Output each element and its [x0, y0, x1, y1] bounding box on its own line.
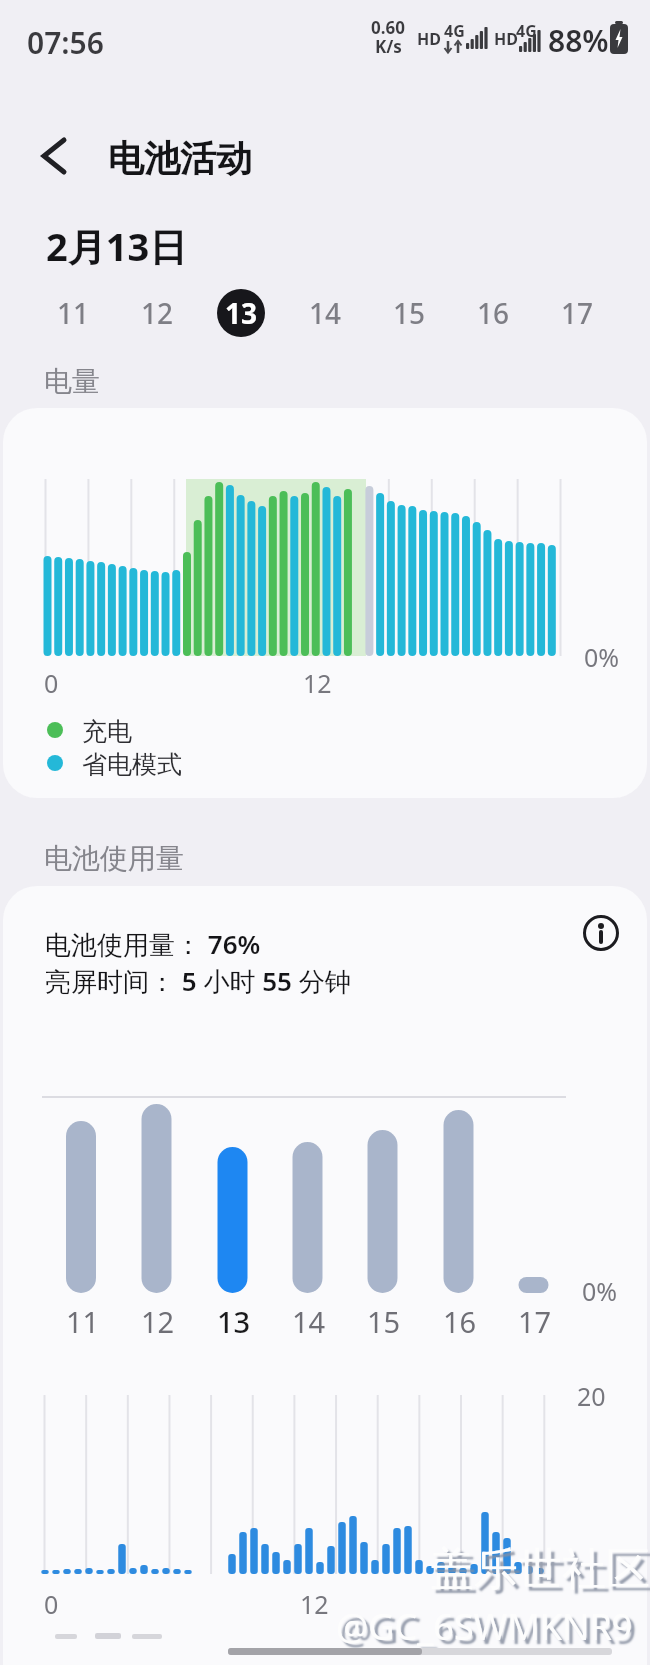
staticText: 2月13日	[46, 220, 188, 272]
staticText: 4G	[516, 20, 537, 42]
button[interactable]: 12	[125, 289, 189, 337]
staticText: 14	[292, 1302, 326, 1340]
staticText: 0%	[582, 1274, 618, 1308]
staticText: 电池使用量： 76%	[45, 926, 261, 962]
staticText: @GC_6SWMKNR9	[336, 1602, 633, 1651]
staticText: 16	[443, 1302, 477, 1340]
staticText: 14	[309, 294, 342, 332]
button[interactable]: 13	[217, 289, 265, 337]
staticText: 电池活动	[108, 136, 252, 181]
staticText: HD	[494, 28, 518, 50]
staticText: 12	[141, 294, 174, 332]
staticText: 16	[477, 294, 510, 332]
staticText: 0.60	[371, 16, 405, 39]
button[interactable]: 17	[545, 289, 609, 337]
staticText: 20	[577, 1379, 606, 1413]
button[interactable]: 14	[293, 289, 357, 337]
staticText: 17	[518, 1302, 552, 1340]
staticText: 12	[303, 666, 332, 700]
button[interactable]: 15	[377, 289, 441, 337]
button[interactable]: 11	[41, 289, 105, 337]
staticText: 盖乐世社区	[430, 1542, 650, 1597]
staticText: 0	[44, 666, 59, 700]
button[interactable]	[575, 907, 627, 959]
staticText: 15	[393, 294, 426, 332]
staticText: 07:56	[27, 22, 104, 63]
staticText: 电量	[44, 364, 100, 399]
button[interactable]: 16	[461, 289, 525, 337]
staticText: K/s	[375, 35, 402, 58]
staticText: 15	[367, 1302, 401, 1340]
staticText: 17	[561, 294, 594, 332]
staticText: 13	[217, 1302, 251, 1340]
staticText: 12	[300, 1587, 329, 1621]
staticText: 亮屏时间： 5 小时 55 分钟	[45, 963, 351, 999]
staticText: 4G	[444, 20, 465, 42]
staticText: 电池使用量	[44, 841, 184, 876]
staticText: 12	[141, 1302, 175, 1340]
staticText: 13	[225, 294, 258, 332]
staticText: HD	[417, 28, 441, 50]
staticText: 11	[57, 294, 90, 332]
staticText: 11	[66, 1302, 100, 1340]
staticText: 充电	[82, 716, 132, 747]
staticText: 0%	[584, 640, 620, 674]
button[interactable]	[32, 130, 78, 182]
staticText: 省电模式	[82, 749, 182, 780]
staticText: 0	[44, 1587, 59, 1621]
staticText: 88%	[548, 20, 609, 61]
